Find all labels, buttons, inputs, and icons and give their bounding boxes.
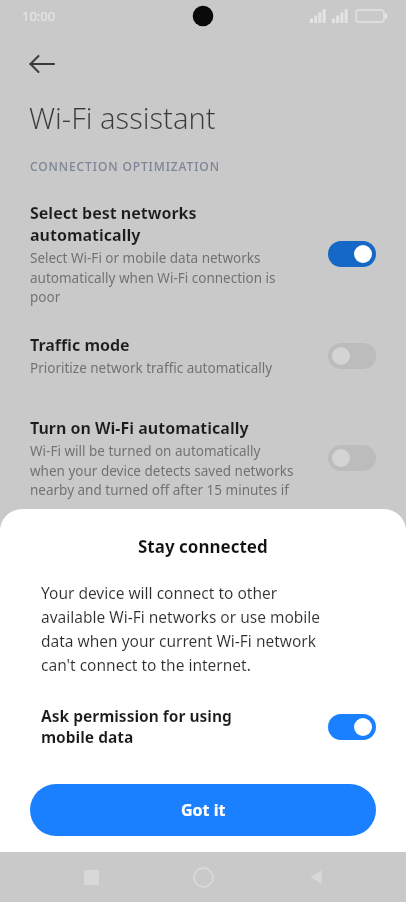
button[interactable]: Traffic mode: [0, 334, 406, 377]
staticText: Ask permission for using mobile data: [41, 705, 328, 748]
button[interactable]: Home: [181, 855, 225, 899]
button[interactable]: Toggle on: [328, 241, 376, 267]
staticText: Prioritize network traffic automatically: [30, 359, 273, 377]
staticText: Turn on Wi-Fi automatically: [30, 417, 249, 439]
staticText: Wi-Fi will be turned on automatically wh…: [30, 442, 294, 499]
staticText: Got it: [181, 799, 226, 821]
staticText: 10:00: [22, 7, 56, 25]
staticText: Select best networks automatically: [30, 202, 197, 246]
button[interactable]: Select best networks automatically: [0, 202, 406, 306]
button[interactable]: Back: [18, 40, 66, 88]
button[interactable]: Toggle off: [328, 445, 376, 471]
staticText: Select Wi-Fi or mobile data networks aut…: [30, 249, 276, 306]
button[interactable]: Turn on Wi-Fi automatically: [0, 417, 406, 499]
button[interactable]: Toggle off: [328, 343, 376, 369]
staticText: CONNECTION OPTIMIZATION: [30, 158, 220, 174]
button[interactable]: Recents: [69, 855, 113, 899]
button[interactable]: Got it: [30, 784, 376, 836]
staticText: Your device will connect to other availa…: [41, 582, 321, 675]
staticText: Traffic mode: [30, 334, 130, 356]
staticText: Wi-Fi assistant: [29, 98, 216, 137]
staticText: Stay connected: [138, 535, 268, 558]
button[interactable]: Ask permission for using mobile data: [0, 705, 406, 748]
button[interactable]: Toggle on: [328, 714, 376, 740]
